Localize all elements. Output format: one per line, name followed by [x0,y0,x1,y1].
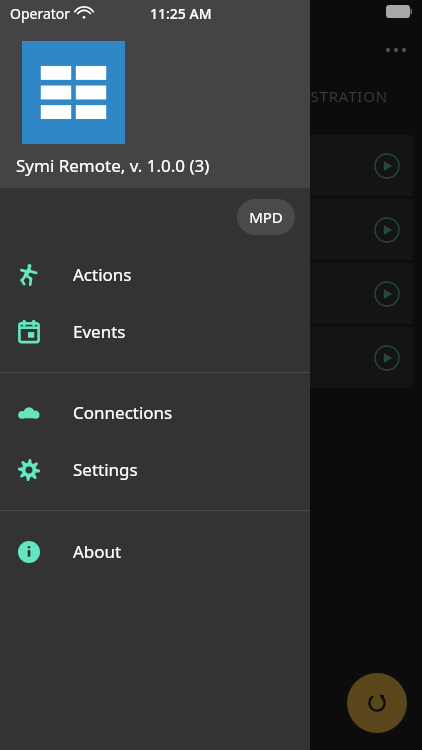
button[interactable]: Run [371,278,403,310]
button[interactable]: Run [250,263,413,324]
button[interactable]: Run [371,150,403,182]
staticText: Actions [73,263,132,286]
button[interactable]: Events [0,303,310,360]
button[interactable]: Run [250,135,413,196]
button[interactable]: More options [378,32,414,68]
staticText: Symi Remote, v. 1.0.0 (3) [16,154,210,177]
staticText: 11:25 AM [150,4,212,23]
button[interactable]: Run [371,342,403,374]
button[interactable]: Actions [0,246,310,303]
staticText: About [73,540,122,563]
button[interactable]: Connections [0,384,310,441]
button[interactable]: Run [250,199,413,260]
button[interactable]: MPD [237,199,295,235]
staticText: Operator [10,4,71,23]
staticText: MPD [249,207,283,227]
button[interactable]: Settings [0,441,310,498]
staticText: ADMINISTRATION [250,86,388,106]
button[interactable]: Run [371,214,403,246]
staticText: Settings [73,458,138,481]
button[interactable]: Run [250,327,413,388]
staticText: Connections [73,401,173,424]
staticText: Events [73,320,126,343]
button[interactable]: Refresh [347,673,407,733]
button[interactable]: About [0,523,310,580]
